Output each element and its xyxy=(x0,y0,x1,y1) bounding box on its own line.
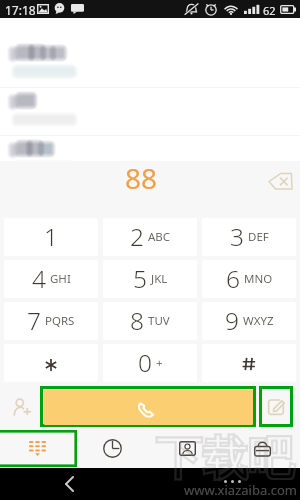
staticText: 6 xyxy=(226,262,240,295)
staticText: 8 xyxy=(130,304,144,337)
staticText: WXYZ xyxy=(243,313,274,329)
button[interactable]: 3 xyxy=(202,218,296,256)
staticText: 1 xyxy=(44,220,58,253)
staticText: 2 xyxy=(130,220,144,253)
button[interactable]: 6 xyxy=(202,260,296,298)
staticText: ABC xyxy=(148,229,171,245)
staticText: 7 xyxy=(27,304,41,337)
staticText: 5 xyxy=(133,262,147,295)
button[interactable]: 0 xyxy=(103,344,197,382)
button[interactable]: 4 xyxy=(4,260,98,298)
staticText: 88 xyxy=(125,159,158,197)
staticText: 0 xyxy=(138,346,152,379)
staticText: MNO xyxy=(244,271,273,287)
staticText: 下载吧 xyxy=(156,430,294,488)
button[interactable]: Add contact xyxy=(4,389,40,425)
button[interactable]: 5 xyxy=(103,260,197,298)
staticText: TUV xyxy=(148,313,170,329)
staticText: GHI xyxy=(50,271,71,287)
button[interactable]: Back xyxy=(54,469,84,499)
button[interactable]: Recent calls xyxy=(75,429,150,468)
button[interactable]: Services xyxy=(225,429,300,468)
button[interactable]: 8 xyxy=(103,302,197,340)
staticText: + xyxy=(156,355,163,371)
button[interactable]: Contacts xyxy=(150,429,225,468)
staticText: DEF xyxy=(248,229,269,245)
button[interactable]: 1 xyxy=(4,218,98,256)
staticText: 9 xyxy=(225,304,239,337)
button[interactable] xyxy=(4,344,98,382)
staticText: 62 xyxy=(263,3,276,18)
staticText: 4 xyxy=(32,262,46,295)
button[interactable]: New note xyxy=(262,389,290,424)
staticText: www.xiazaiba.com xyxy=(184,481,297,499)
staticText: 3 xyxy=(230,220,244,253)
button[interactable]: 9 xyxy=(202,302,296,340)
button[interactable]: 7 xyxy=(4,302,98,340)
staticText: PQRS xyxy=(45,313,75,329)
staticText: 17:18 xyxy=(5,2,36,18)
button[interactable]: Call xyxy=(44,390,253,425)
button[interactable]: Dialpad xyxy=(0,429,75,468)
button[interactable] xyxy=(202,344,296,382)
button[interactable]: Delete xyxy=(262,164,298,198)
staticText: JKL xyxy=(151,271,168,287)
button[interactable]: 2 xyxy=(103,218,197,256)
